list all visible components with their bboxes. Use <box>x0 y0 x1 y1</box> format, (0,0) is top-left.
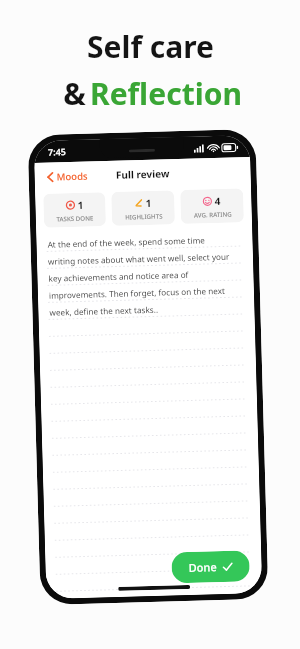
button[interactable]: 1 <box>43 192 106 228</box>
staticText: key achievements and notice area of <box>48 269 189 284</box>
staticText: At the end of the week, spend some time <box>47 234 206 250</box>
staticText: AVG. RATING <box>194 210 232 219</box>
button[interactable]: Done <box>171 550 250 583</box>
button[interactable]: 4 <box>180 188 244 224</box>
staticText: Done <box>188 559 217 575</box>
staticText: Self care <box>87 26 214 67</box>
button[interactable]: Moods <box>42 166 92 187</box>
staticText: & <box>59 73 90 114</box>
staticText: TASKS DONE <box>56 213 94 223</box>
staticText: 1 <box>77 198 84 212</box>
staticText: writing notes about what went well, sele… <box>48 251 230 267</box>
staticText: Full review <box>115 166 170 182</box>
staticText: HIGHLIGHTS <box>125 211 163 221</box>
staticText: improvements. Then forget, focus on the … <box>49 285 226 301</box>
staticText: 4 <box>214 194 221 208</box>
staticText: Moods <box>56 170 88 183</box>
button[interactable]: 1 <box>111 190 175 226</box>
staticText: week, define the next tasks.. <box>49 304 159 318</box>
staticText: 1 <box>145 196 152 210</box>
staticText: 7:45 <box>48 145 66 158</box>
staticText: Reflection <box>90 73 242 114</box>
